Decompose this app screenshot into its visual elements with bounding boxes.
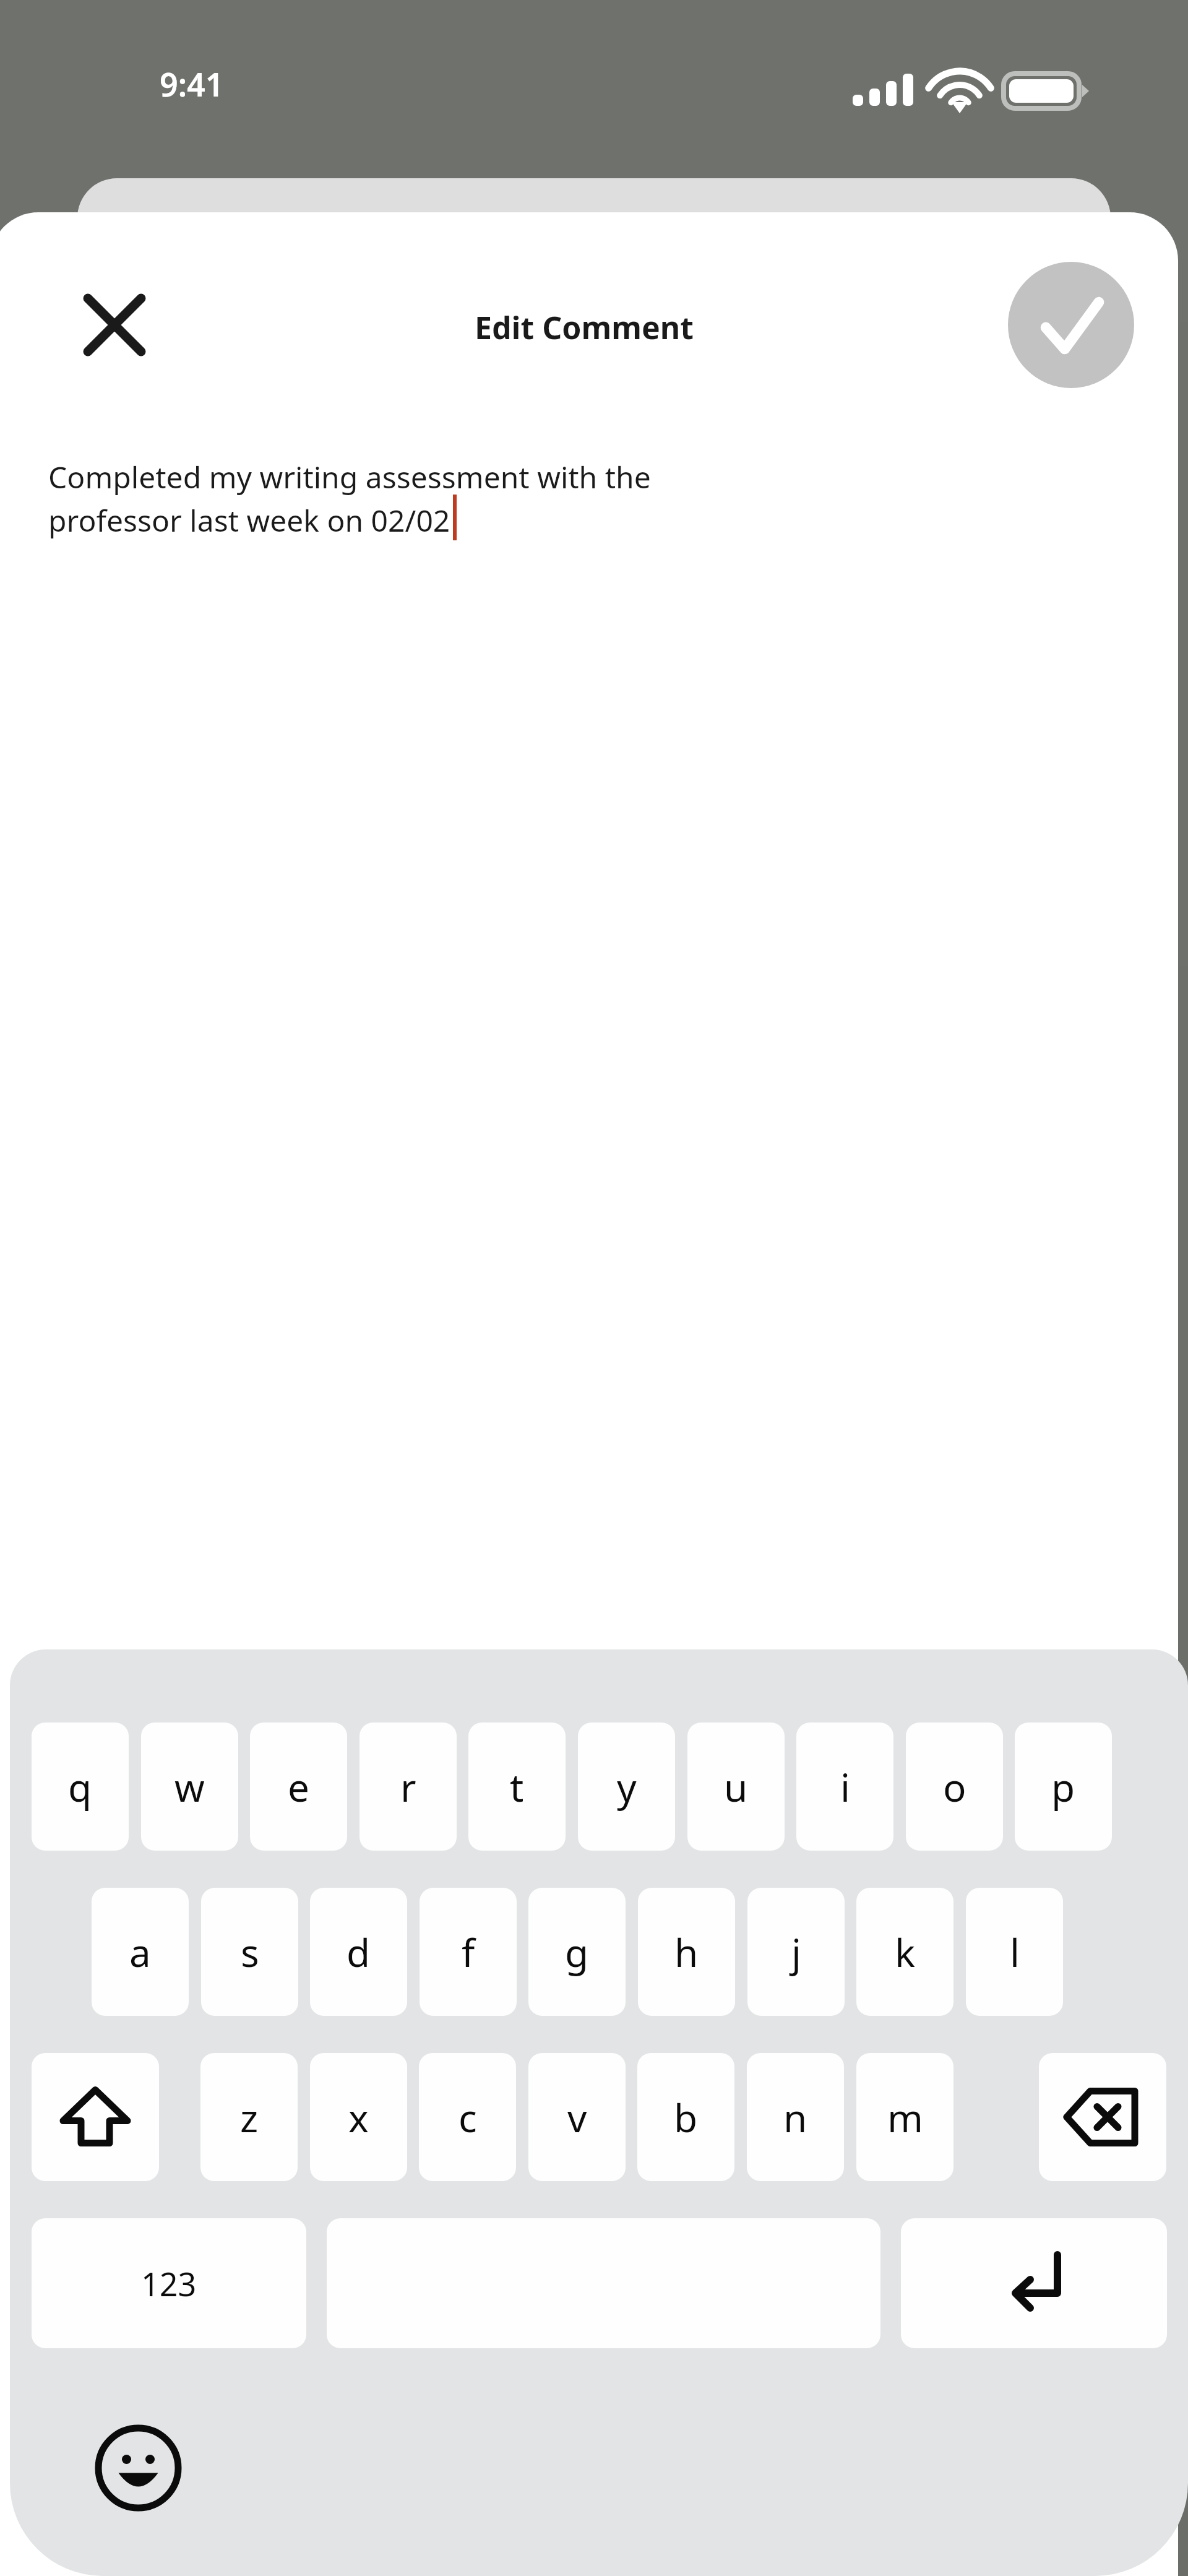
button[interactable]: Close <box>49 260 179 390</box>
staticText: q <box>68 1761 92 1813</box>
button[interactable]: l <box>966 1888 1063 2016</box>
staticText: k <box>895 1926 916 1978</box>
staticText: t <box>510 1761 524 1813</box>
button[interactable]: w <box>141 1722 238 1851</box>
button[interactable]: Completed my writing assessment with the <box>0 457 1178 642</box>
button[interactable]: z <box>200 2053 298 2181</box>
button[interactable]: t <box>468 1722 566 1851</box>
staticText: a <box>129 1926 151 1978</box>
button[interactable]: Return <box>901 2218 1167 2348</box>
staticText: Edit Comment <box>0 306 1178 348</box>
staticText: r <box>400 1761 416 1813</box>
button[interactable]: b <box>637 2053 734 2181</box>
staticText: p <box>1051 1761 1075 1813</box>
button[interactable]: p <box>1015 1722 1112 1851</box>
staticText: l <box>1010 1926 1020 1978</box>
staticText: n <box>783 2091 807 2143</box>
staticText: d <box>346 1926 371 1978</box>
staticText: e <box>288 1761 309 1813</box>
staticText: x <box>348 2091 369 2143</box>
button[interactable]: Save <box>1008 262 1134 388</box>
button[interactable]: r <box>359 1722 457 1851</box>
button[interactable]: e <box>250 1722 347 1851</box>
button[interactable]: y <box>578 1722 675 1851</box>
staticText: h <box>674 1926 699 1978</box>
staticText: m <box>887 2091 923 2143</box>
button[interactable]: 123 <box>32 2218 306 2348</box>
button[interactable]: d <box>310 1888 407 2016</box>
button[interactable]: a <box>92 1888 189 2016</box>
button[interactable]: x <box>310 2053 407 2181</box>
staticText: y <box>617 1761 637 1813</box>
staticText: b <box>674 2091 698 2143</box>
button[interactable]: g <box>528 1888 626 2016</box>
button[interactable]: h <box>638 1888 735 2016</box>
staticText: w <box>174 1761 205 1813</box>
staticText: i <box>840 1761 850 1813</box>
staticText: 123 <box>141 2262 197 2306</box>
staticText: f <box>462 1926 475 1978</box>
staticText: Completed my writing assessment with the <box>48 457 651 497</box>
staticText: v <box>567 2091 587 2143</box>
button[interactable]: Emoji <box>93 2423 183 2513</box>
staticText: 9:41 <box>160 62 224 106</box>
button[interactable]: k <box>856 1888 953 2016</box>
button[interactable]: m <box>856 2053 953 2181</box>
button[interactable]: o <box>906 1722 1003 1851</box>
button[interactable]: q <box>32 1722 129 1851</box>
staticText: o <box>943 1761 966 1813</box>
button[interactable]: Backspace <box>1039 2053 1166 2181</box>
button[interactable]: Shift <box>32 2053 159 2181</box>
staticText: u <box>724 1761 748 1813</box>
staticText: professor last week on 02/02 <box>48 500 450 540</box>
button[interactable]: n <box>747 2053 844 2181</box>
button[interactable]: c <box>419 2053 516 2181</box>
staticText: j <box>791 1926 801 1978</box>
button[interactable]: u <box>687 1722 785 1851</box>
button[interactable]: i <box>796 1722 893 1851</box>
button[interactable]: v <box>528 2053 626 2181</box>
staticText: z <box>240 2091 259 2143</box>
button[interactable]: j <box>747 1888 845 2016</box>
button[interactable]: s <box>201 1888 298 2016</box>
staticText: c <box>458 2091 477 2143</box>
staticText: s <box>241 1926 259 1978</box>
staticText: g <box>565 1926 589 1978</box>
button[interactable]: f <box>420 1888 517 2016</box>
